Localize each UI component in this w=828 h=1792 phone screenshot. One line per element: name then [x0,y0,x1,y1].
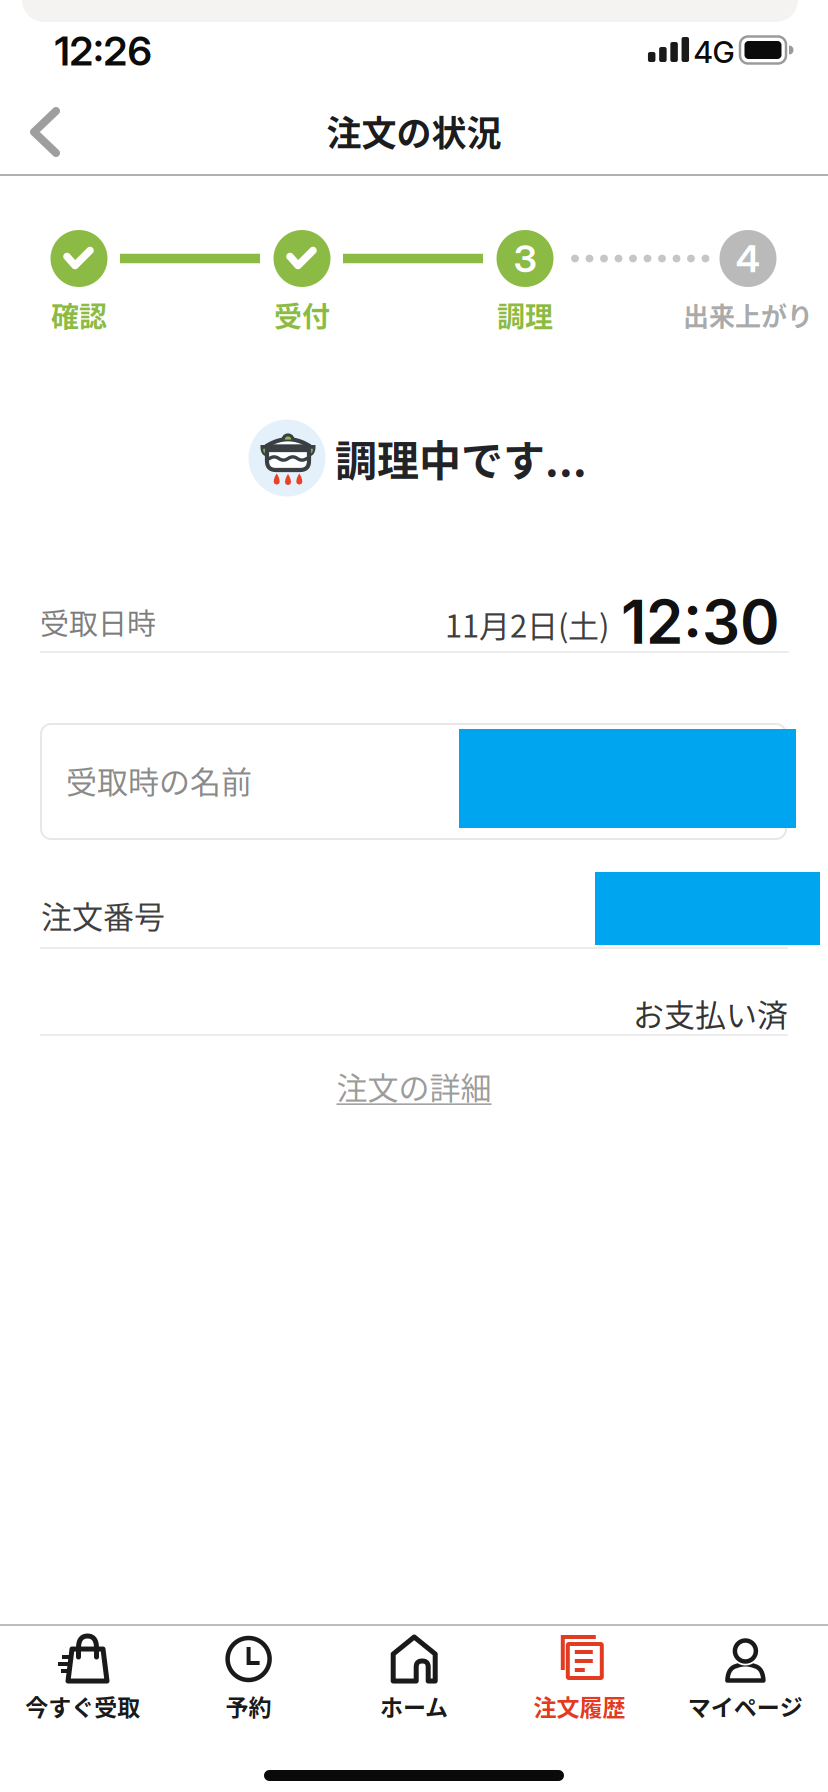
staticText: 今すぐ受取 [25,1689,140,1723]
staticText: 12:26 [54,27,151,75]
button[interactable]: 注文の詳細 [336,1064,491,1108]
staticText: 3 [513,235,536,281]
staticText: 11月2日(土) [445,602,609,646]
staticText: 受付 [274,295,330,335]
staticText: 4G [693,34,734,70]
staticText: 注文の詳細 [336,1064,491,1108]
staticText: マイページ [688,1689,803,1723]
staticText: 12:30 [621,586,780,658]
button[interactable]: 予約 [166,1626,331,1744]
button[interactable]: 今すぐ受取 [0,1626,166,1744]
staticText: 注文の状況 [326,106,501,156]
staticText: 受取時の名前 [66,758,252,802]
button[interactable]: マイページ [662,1626,828,1744]
staticText: 4 [735,235,760,281]
staticText: ホーム [380,1689,448,1723]
button[interactable]: ホーム [331,1626,497,1744]
staticText: 予約 [225,1689,271,1723]
staticText: 注文番号 [41,893,165,937]
staticText: 確認 [51,295,107,335]
staticText: 出来上がり [683,296,813,334]
staticText: 注文履歴 [534,1689,626,1723]
button[interactable]: Back [7,94,83,170]
staticText: 調理 [497,295,553,335]
staticText: 調理中です... [335,428,587,488]
button[interactable]: 注文履歴 [497,1626,662,1744]
staticText: 受取日時 [40,601,156,643]
staticText: お支払い済 [633,991,788,1035]
